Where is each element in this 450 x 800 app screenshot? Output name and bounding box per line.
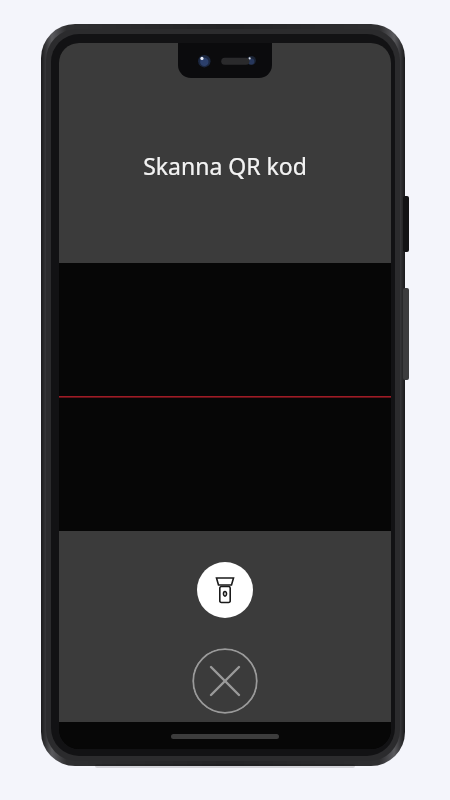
button[interactable]: Flashlight: [197, 562, 253, 618]
staticText: Skanna QR kod: [59, 150, 391, 190]
button[interactable]: Close: [192, 648, 258, 714]
